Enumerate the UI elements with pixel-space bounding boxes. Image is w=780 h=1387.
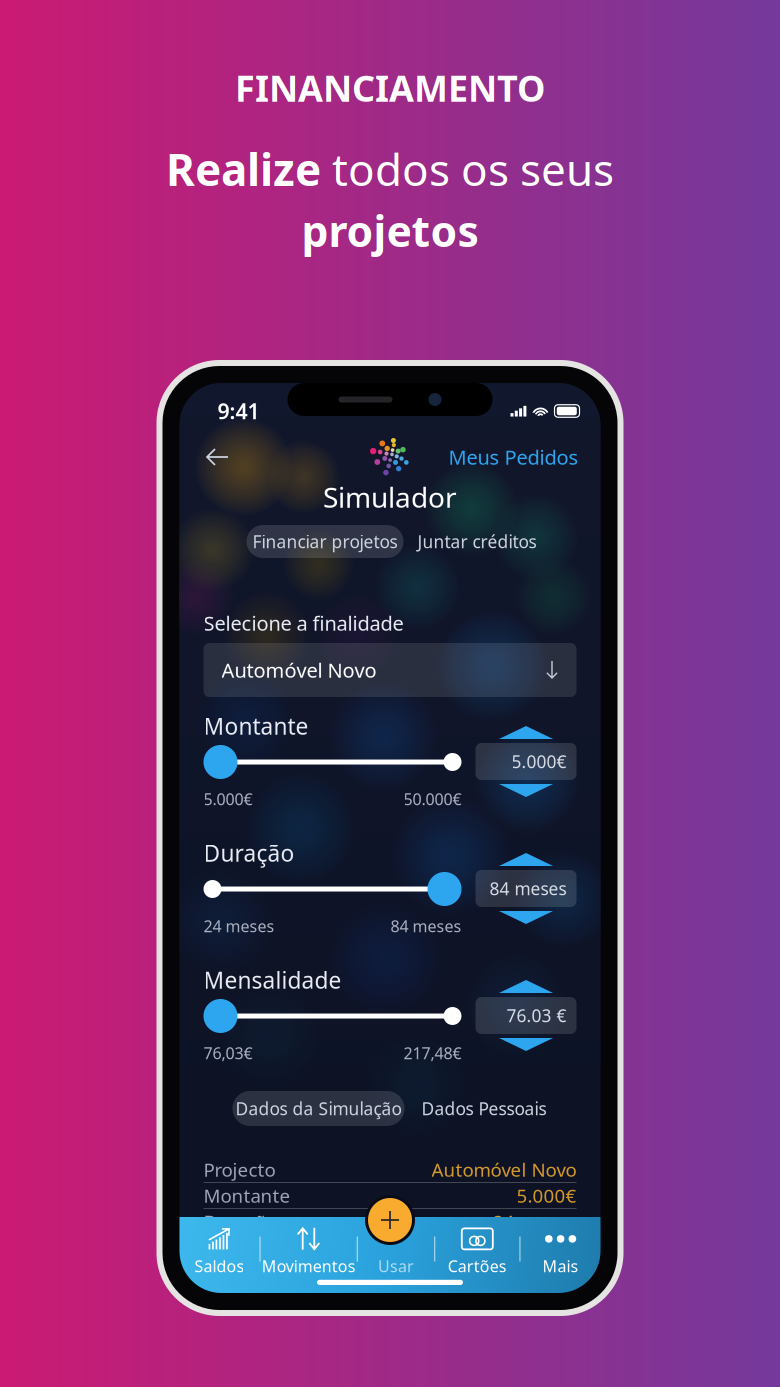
staticText: Duração [203,838,294,868]
staticText: Duração [203,1209,276,1234]
staticText: 9:41 [217,397,259,425]
staticText: Montante [203,711,308,741]
button[interactable]: Back [197,439,237,475]
button[interactable]: Dados da Simulação [232,1091,404,1126]
button[interactable]: Saldos [179,1227,259,1277]
staticText: Juntar créditos [417,530,536,553]
button[interactable]: Juntar créditos [403,525,550,558]
button[interactable]: Automóvel Novo [203,643,576,697]
staticText: Financiar projetos [252,530,397,553]
staticText: Montante [203,1183,290,1208]
staticText: 50.000€ [403,788,461,810]
staticText: 76,03€ [203,1042,252,1064]
button[interactable]: Usar [358,1227,434,1277]
button[interactable]: Mais [521,1227,601,1277]
staticText: Mensalidade [203,965,341,995]
button[interactable]: Financiar projetos [246,525,403,558]
staticText: Realize [166,140,321,198]
staticText: Automóvel Novo [431,1157,576,1182]
button[interactable]: Usar [365,1195,415,1245]
staticText: 5.000€ [203,788,252,810]
staticText: Automóvel Novo [221,657,376,683]
button[interactable]: Movimentos [261,1227,357,1277]
staticText: Saldos [194,1255,244,1277]
staticText: 5.000€ [516,1183,576,1208]
staticText: 84 meses [489,877,566,900]
staticText: Selecione a finalidade [203,610,403,636]
staticText: Projecto [203,1157,275,1182]
staticText: FINANCIAMENTO [235,64,545,112]
staticText: 84 meses [390,915,461,937]
staticText: Meus Pedidos [448,444,578,470]
button[interactable]: Cartões [435,1227,519,1277]
staticText: Dados da Simulação [235,1097,401,1120]
staticText: Mais [543,1255,579,1277]
button[interactable]: Meus Pedidos [448,439,578,475]
staticText: todos os seus [321,140,614,198]
staticText: Movimentos [262,1255,356,1277]
staticText: projetos [301,202,478,259]
staticText: Cartões [448,1255,507,1277]
staticText: 76.03 € [506,1004,566,1027]
staticText: 217,48€ [403,1042,461,1064]
staticText: 5.000€ [511,750,566,773]
staticText: Dados Pessoais [421,1097,546,1120]
button[interactable]: Dados Pessoais [404,1091,563,1126]
staticText: Simulador [323,478,457,516]
staticText: 84 meses [492,1209,576,1234]
staticText: Usar [378,1255,414,1277]
staticText: 24 meses [203,915,274,937]
